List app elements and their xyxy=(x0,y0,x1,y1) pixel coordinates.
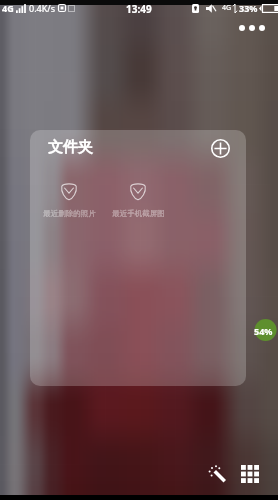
button[interactable]: 最近手机截屏图 xyxy=(103,182,173,218)
button[interactable]: Magic wand xyxy=(207,464,229,486)
staticText: 最近删除的照片 xyxy=(43,209,96,218)
button[interactable]: More options xyxy=(234,19,270,37)
staticText: 33% xyxy=(239,2,258,14)
staticText: 13:49 xyxy=(126,2,152,16)
staticText: 文件夹 xyxy=(48,138,93,157)
staticText: 4G xyxy=(2,2,14,14)
button[interactable]: 最近删除的照片 xyxy=(34,182,104,218)
button[interactable]: All apps xyxy=(241,465,259,483)
staticText: 最近手机截屏图 xyxy=(112,209,165,218)
staticText: 0.4K/s xyxy=(29,2,55,14)
staticText: 4G xyxy=(222,3,232,13)
button[interactable]: Add folder xyxy=(208,136,233,161)
staticText: 54% xyxy=(254,325,273,337)
